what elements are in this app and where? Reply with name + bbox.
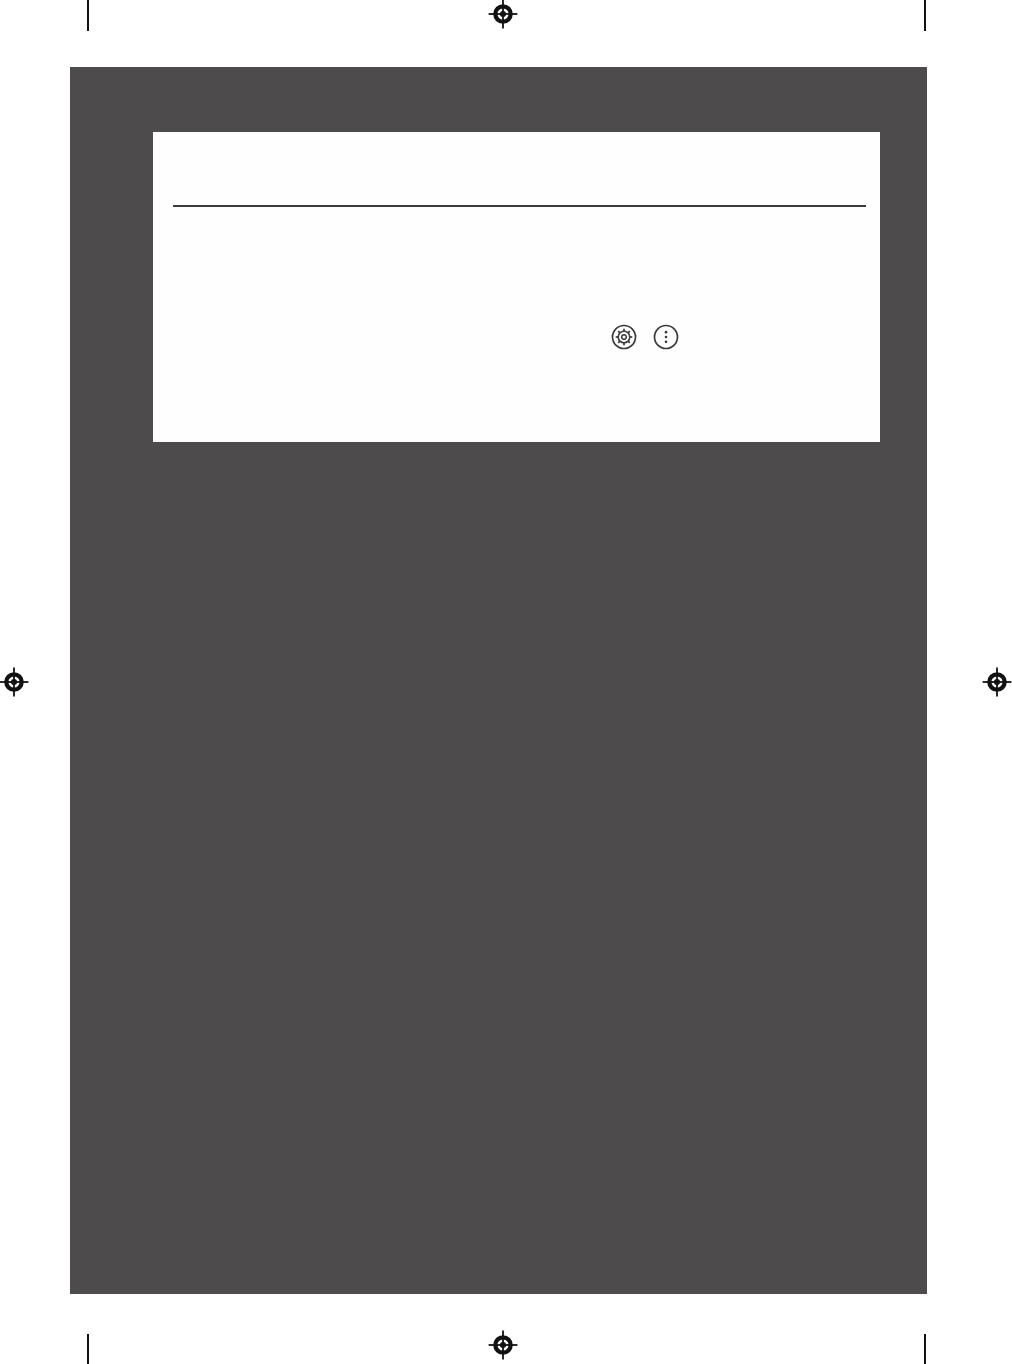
button[interactable]: Settings [608,321,640,353]
button[interactable]: More options [650,321,682,353]
